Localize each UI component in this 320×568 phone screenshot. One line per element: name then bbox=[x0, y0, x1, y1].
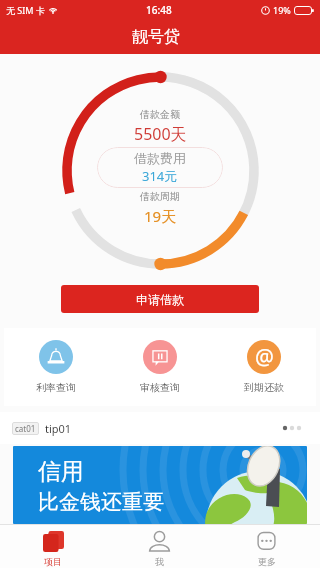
staticText: 314元 bbox=[142, 167, 178, 185]
staticText: tip01 bbox=[45, 421, 72, 436]
staticText: cat01 bbox=[15, 423, 36, 434]
staticText: 无 SIM 卡 bbox=[6, 4, 45, 16]
staticText: 审核查询 bbox=[140, 381, 180, 394]
staticText: 借款金额 bbox=[140, 108, 180, 121]
button[interactable]: @ bbox=[212, 328, 316, 406]
button[interactable]: 利率查询 bbox=[4, 328, 108, 406]
staticText: 比金钱还重要 bbox=[38, 489, 164, 515]
button[interactable]: 申请借款 bbox=[61, 285, 259, 313]
staticText: 16:48 bbox=[146, 3, 172, 17]
button[interactable]: 更多 bbox=[213, 524, 320, 568]
staticText: 借款周期 bbox=[140, 190, 180, 203]
staticText: 利率查询 bbox=[36, 381, 76, 394]
button[interactable]: 信用 bbox=[13, 446, 307, 524]
staticText: 19天 bbox=[144, 206, 177, 226]
button[interactable]: 审核查询 bbox=[108, 328, 212, 406]
staticText: 信用 bbox=[38, 457, 84, 486]
staticText: 申请借款 bbox=[136, 292, 184, 307]
staticText: 项目 bbox=[44, 556, 62, 567]
staticText: 19% bbox=[273, 4, 291, 16]
staticText: 借款费用 bbox=[134, 150, 186, 166]
staticText: 更多 bbox=[258, 556, 276, 567]
staticText: 到期还款 bbox=[244, 381, 284, 394]
staticText: 我 bbox=[155, 556, 164, 567]
staticText: @ bbox=[255, 343, 274, 372]
staticText: 靓号贷 bbox=[132, 27, 180, 47]
staticText: 5500天 bbox=[134, 123, 187, 145]
button[interactable]: 我 bbox=[106, 524, 213, 568]
button[interactable]: 项目 bbox=[0, 524, 106, 568]
